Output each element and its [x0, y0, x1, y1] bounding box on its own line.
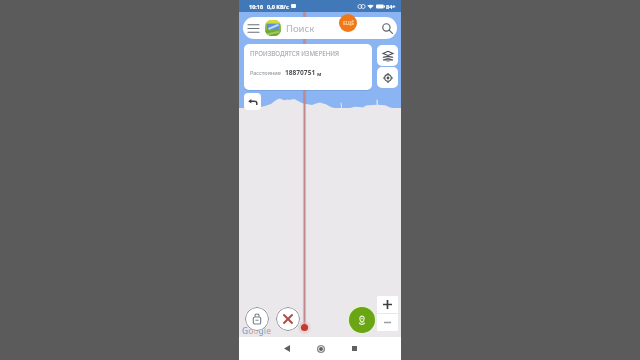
button[interactable]: Delete	[245, 307, 269, 331]
staticText: Поиск	[286, 22, 315, 35]
staticText: 0,0 KB/c	[267, 3, 289, 10]
button[interactable]: My location	[377, 67, 398, 88]
button[interactable]: Zoom out	[377, 314, 398, 331]
button[interactable]: Cancel	[276, 307, 300, 331]
button[interactable]: Search	[380, 21, 394, 35]
staticText: 18870751	[285, 68, 316, 77]
button[interactable]: Поиск	[243, 17, 397, 39]
button[interactable]: Profile	[339, 14, 357, 32]
staticText: ЕЩЁ	[343, 20, 354, 27]
staticText: Google	[242, 325, 272, 337]
staticText: 84+	[386, 3, 396, 10]
button[interactable]: Home	[313, 341, 328, 356]
button[interactable]: ПРОИЗВОДЯТСЯ ИЗМЕРЕНИЯ	[244, 44, 372, 90]
staticText: Расстояние	[250, 69, 281, 77]
staticText: м	[317, 70, 322, 77]
staticText: 10:16	[249, 3, 264, 10]
button[interactable]: Zoom in	[377, 296, 398, 313]
button[interactable]: Undo	[244, 93, 261, 110]
staticText: ПРОИЗВОДЯТСЯ ИЗМЕРЕНИЯ	[250, 49, 339, 57]
button[interactable]: Add point	[349, 307, 375, 333]
button[interactable]: Map layers	[377, 45, 398, 66]
button[interactable]: Back	[279, 341, 294, 356]
button[interactable]: Recents	[347, 341, 362, 356]
